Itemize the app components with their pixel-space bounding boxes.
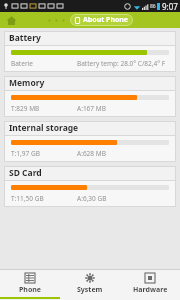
button[interactable]: Battery: [4, 31, 176, 72]
staticText: A:167 MB: [77, 104, 106, 113]
staticText: Phone: [19, 285, 42, 295]
staticText: Baterie: [11, 59, 33, 68]
staticText: Battery: [9, 32, 41, 44]
staticText: Internal storage: [9, 122, 79, 134]
button[interactable]: Memory: [4, 76, 176, 117]
button[interactable]: Home: [0, 12, 22, 28]
staticText: Memory: [9, 77, 45, 89]
staticText: A:6,30 GB: [77, 194, 107, 203]
staticText: SD Card: [9, 167, 42, 179]
staticText: A:628 MB: [77, 149, 106, 158]
staticText: System: [77, 285, 103, 295]
staticText: Hardware: [133, 285, 168, 295]
staticText: T:829 MB: [11, 104, 40, 113]
staticText: T:11,50 GB: [11, 194, 44, 203]
staticText: Battery temp: 28.0° C/82,4° F: [77, 59, 166, 68]
staticText: T:1,97 GB: [11, 149, 40, 158]
button[interactable]: System: [60, 270, 120, 300]
staticText: About Phone: [83, 15, 129, 25]
staticText: 9:07: [162, 1, 178, 12]
button[interactable]: About Phone: [70, 14, 133, 26]
button[interactable]: Hardware: [120, 270, 180, 300]
button[interactable]: SD Card: [4, 166, 176, 207]
button[interactable]: Phone: [0, 270, 60, 300]
staticText: 86: [150, 3, 156, 10]
button[interactable]: Internal storage: [4, 121, 176, 162]
